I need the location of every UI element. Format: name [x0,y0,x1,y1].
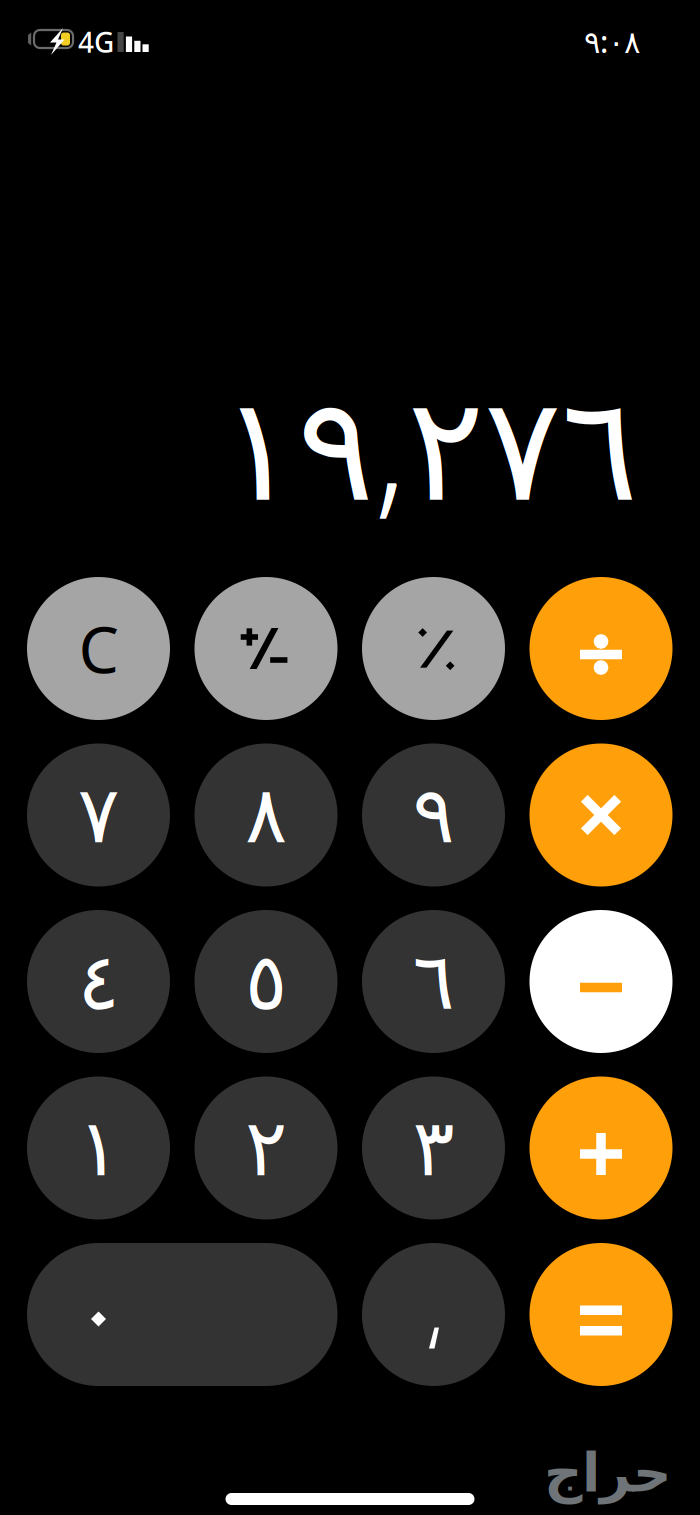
button[interactable]: ٧ [27,743,170,886]
staticText: ٣ [412,1103,454,1193]
button[interactable]: ٢ [194,1076,337,1219]
button[interactable]: ٣ [362,1076,505,1219]
button[interactable]: ٥ [194,910,337,1053]
staticText: ٩:٠٨ [584,21,640,61]
button[interactable]: ٩ [362,743,505,886]
button[interactable] [529,577,672,720]
button[interactable]: C [27,577,170,720]
staticText: حراج [543,1443,670,1503]
button[interactable] [194,577,337,720]
button[interactable]: ٨ [194,743,337,886]
staticText: ٢ [245,1103,287,1193]
button[interactable]: ١ [27,1076,170,1219]
staticText: ٥ [245,937,287,1026]
staticText: ١٩,٢٧٦ [220,348,638,540]
button[interactable] [362,1243,505,1386]
button[interactable] [529,1243,672,1386]
button[interactable]: ٦ [362,910,505,1053]
button[interactable] [529,910,672,1053]
button[interactable] [529,1076,672,1219]
button[interactable] [529,743,672,886]
staticText: ٦ [412,937,454,1026]
staticText: 4G [78,23,114,61]
button[interactable]: ٤ [27,910,170,1053]
staticText: ٨ [245,770,287,860]
staticText: ٧ [77,770,119,860]
button[interactable] [362,577,505,720]
staticText: ١ [77,1103,119,1193]
staticText: ٤ [77,937,119,1026]
button[interactable] [27,1243,337,1386]
staticText: ٩ [412,770,454,860]
staticText: C [78,606,118,691]
